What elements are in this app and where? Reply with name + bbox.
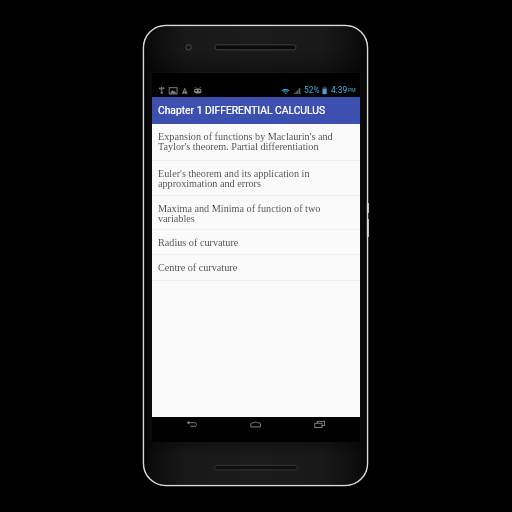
staticText: Chapter 1 DIFFERENTIAL CALCULUS [158, 104, 326, 116]
button[interactable]: Recents [307, 417, 331, 435]
button[interactable]: Chapter 1 DIFFERENTIAL CALCULUS [152, 97, 360, 124]
button[interactable]: Euler's theorem and its application in a… [152, 161, 360, 196]
staticText: PM [348, 87, 356, 93]
button[interactable]: Home [243, 417, 267, 435]
button[interactable]: Centre of curvature [152, 255, 360, 281]
button[interactable]: Back [180, 417, 204, 435]
staticText: Euler's theorem and its application in a… [158, 168, 340, 189]
button[interactable]: Maxima and Minima of function of two var… [152, 196, 360, 230]
staticText: Maxima and Minima of function of two var… [158, 203, 340, 224]
button[interactable]: Expansion of functions by Maclaurin's an… [152, 124, 360, 161]
staticText: Centre of curvature [158, 262, 238, 273]
staticText: 52% [304, 85, 320, 95]
staticText: Expansion of functions by Maclaurin's an… [158, 131, 340, 152]
staticText: Radius of curvature [158, 237, 239, 248]
staticText: 4:39 [331, 85, 348, 95]
button[interactable]: Radius of curvature [152, 230, 360, 255]
